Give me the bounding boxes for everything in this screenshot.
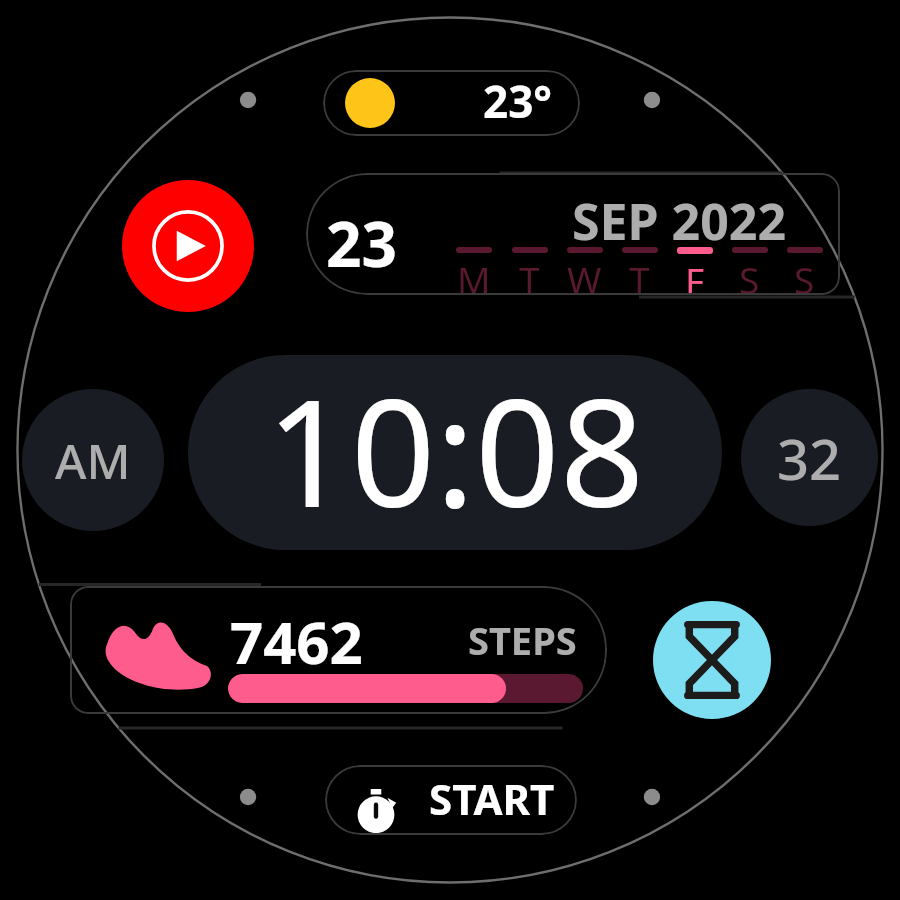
button[interactable]: Timer	[653, 601, 771, 719]
button[interactable]: 7462	[70, 586, 607, 714]
staticText: M	[457, 254, 491, 295]
staticText: T	[519, 254, 540, 295]
staticText: 32	[777, 420, 842, 496]
button[interactable]: 32	[741, 389, 878, 526]
staticText: T	[629, 254, 650, 295]
staticText: W	[567, 254, 602, 295]
staticText: F	[685, 255, 705, 295]
staticText: S	[794, 254, 815, 295]
button[interactable]: 10:08	[188, 355, 722, 550]
staticText: AM	[55, 428, 131, 493]
staticText: 23°	[483, 71, 552, 131]
staticText: 10:08	[266, 355, 645, 544]
button[interactable]: YouTube Music	[122, 180, 254, 312]
button[interactable]: 23	[306, 173, 840, 295]
staticText: S	[739, 254, 760, 295]
staticText: START	[429, 770, 555, 827]
button[interactable]: START	[325, 765, 577, 835]
button[interactable]: 23°	[323, 70, 580, 136]
staticText: 23	[326, 201, 397, 285]
staticText: SEP 2022	[572, 187, 786, 255]
staticText: STEPS	[468, 614, 577, 666]
button[interactable]: AM	[22, 389, 164, 531]
staticText: 7462	[230, 602, 363, 681]
